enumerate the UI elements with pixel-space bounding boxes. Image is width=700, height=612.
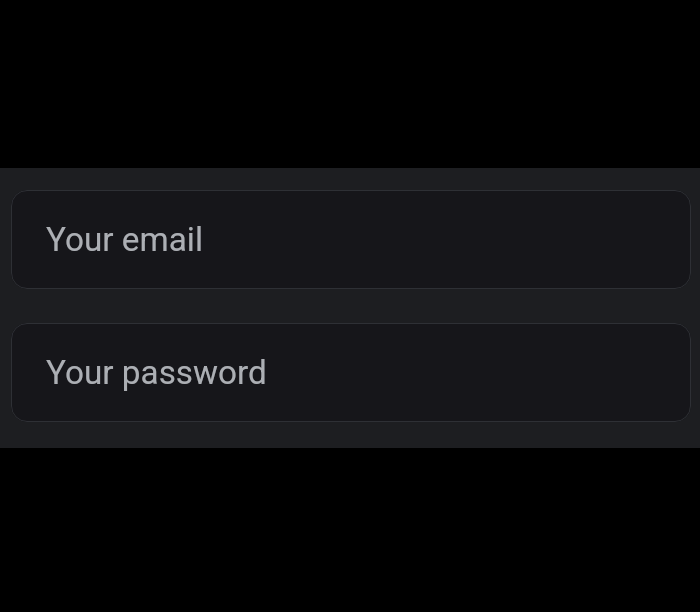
button[interactable]: Your email bbox=[11, 190, 691, 289]
staticText: Your email bbox=[46, 220, 203, 259]
staticText: Your password bbox=[46, 353, 267, 392]
button[interactable]: Your password bbox=[11, 323, 691, 422]
